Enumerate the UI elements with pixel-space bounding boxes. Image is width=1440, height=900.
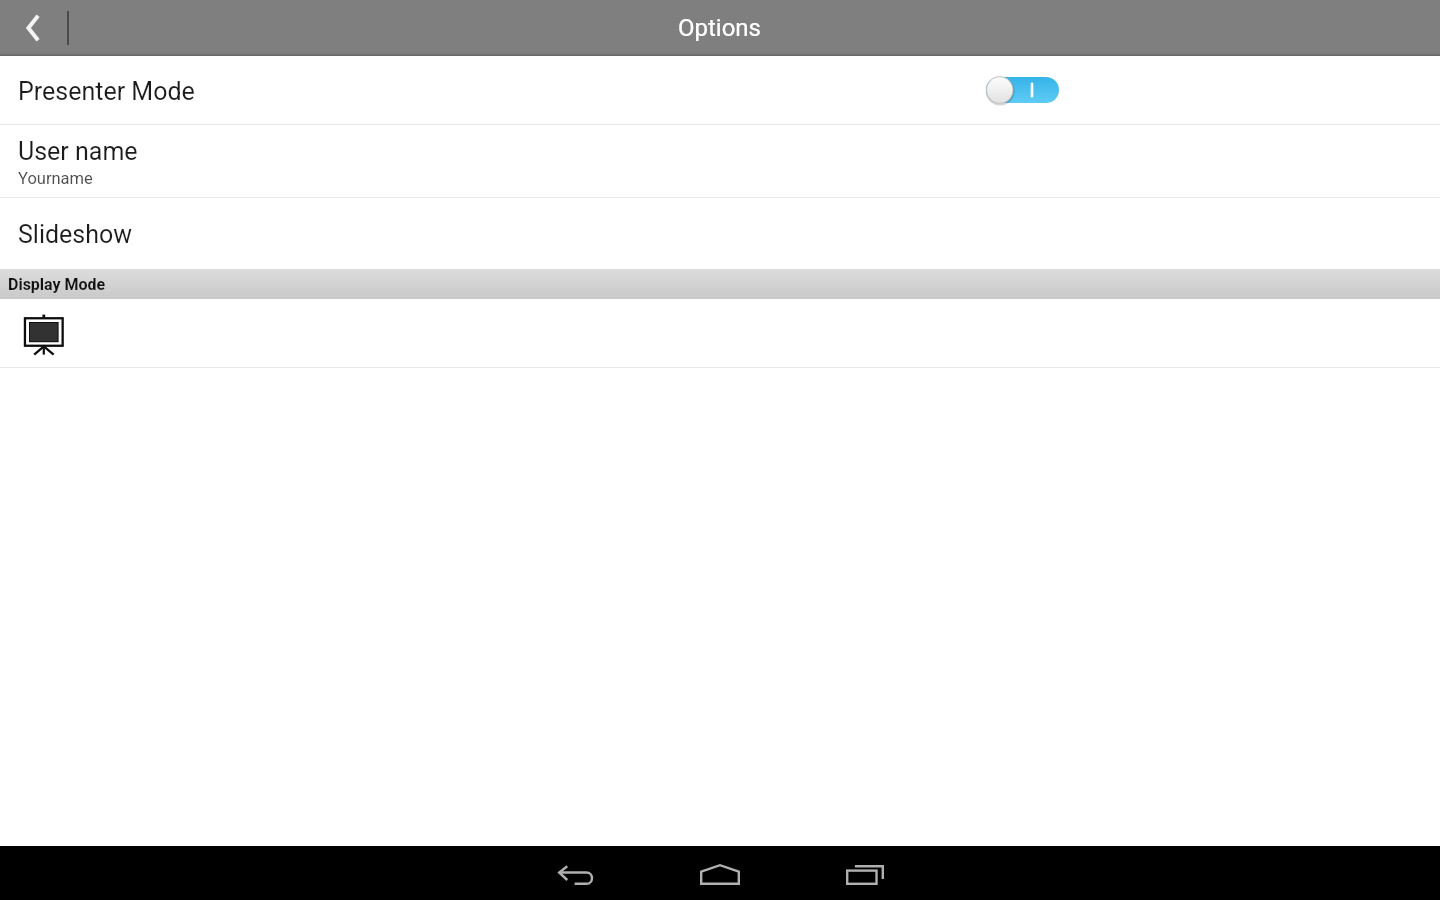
button[interactable]: Back xyxy=(504,846,648,900)
staticText: Presenter Mode xyxy=(18,77,195,106)
staticText: User name xyxy=(18,137,138,166)
button[interactable]: Presenter Mode xyxy=(0,56,1440,124)
button[interactable]: Presentation display mode xyxy=(0,299,1440,367)
button[interactable]: Slideshow xyxy=(0,198,1440,269)
staticText: Display Mode xyxy=(8,275,106,294)
button[interactable]: Home xyxy=(648,846,792,900)
staticText: Options xyxy=(678,14,762,42)
button[interactable]: Presenter Mode toggle xyxy=(986,75,1059,105)
staticText: Slideshow xyxy=(18,220,133,249)
button[interactable]: Navigate up xyxy=(0,0,68,56)
button[interactable]: User name xyxy=(0,125,1440,197)
staticText: Yourname xyxy=(18,169,93,188)
button[interactable]: Recent apps xyxy=(792,846,936,900)
